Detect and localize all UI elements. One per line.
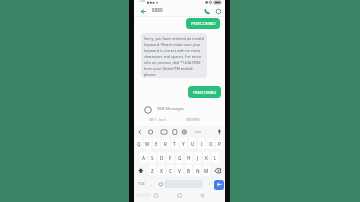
staticText: 8080 (152, 7, 163, 13)
button[interactable]: O (207, 138, 214, 149)
staticText: R (164, 141, 167, 147)
staticText: SMS/MMS (186, 118, 200, 122)
button[interactable]: H (185, 152, 192, 163)
button[interactable]: I (198, 138, 205, 149)
staticText: . (209, 181, 211, 187)
staticText: N (196, 168, 200, 174)
staticText: B (187, 168, 191, 174)
button[interactable]: V (176, 165, 183, 176)
button[interactable]: D (158, 152, 165, 163)
staticText: K (205, 155, 208, 161)
staticText: phone. (144, 72, 157, 77)
staticText: G (178, 155, 182, 161)
button[interactable]: Y (180, 138, 187, 149)
staticText: Q (137, 141, 141, 147)
staticText: L (214, 155, 217, 161)
button[interactable]: G (176, 152, 183, 163)
staticText: SMS Messages (157, 106, 184, 111)
staticText: U (191, 141, 195, 147)
button[interactable]: ?123 (135, 179, 148, 189)
staticText: from your Globe/TM mobile (144, 66, 193, 71)
staticText: M (204, 168, 209, 174)
staticText: keyword is correct with no extra (144, 48, 201, 53)
staticText: FREECOMBO (191, 21, 216, 27)
button[interactable]: W (144, 138, 151, 149)
button[interactable]: FREECOMBO (186, 18, 220, 29)
staticText: S (151, 155, 154, 161)
button[interactable] (214, 180, 224, 190)
staticText: F (169, 155, 172, 161)
staticText: SIM 1 - Send (149, 118, 166, 122)
staticText: E (155, 141, 158, 147)
staticText: info on promos, dial *143#.FREE (144, 60, 201, 65)
button[interactable]: Sorry, you have entered an invalid (141, 33, 207, 78)
button[interactable]: R (162, 138, 169, 149)
button[interactable]: S (149, 152, 156, 163)
staticText: O (209, 141, 213, 147)
staticText: Sorry, you have entered an invalid (144, 36, 204, 41)
staticText: C (169, 168, 172, 174)
button[interactable]: A (140, 152, 147, 163)
staticText: , (151, 181, 153, 187)
staticText: Z (151, 168, 154, 174)
button[interactable]: U (189, 138, 196, 149)
button[interactable]: E (153, 138, 160, 149)
staticText: J (197, 155, 199, 161)
button[interactable]: C (167, 165, 174, 176)
staticText: I (201, 141, 203, 147)
staticText: Y (182, 141, 185, 147)
staticText: T (173, 141, 176, 147)
button[interactable]: Z (149, 165, 156, 176)
staticText: FREECOMBO (193, 90, 217, 95)
button[interactable] (135, 166, 148, 176)
staticText: keyword. Please make sure your (144, 42, 201, 47)
button[interactable]: X (158, 165, 165, 176)
staticText: D (160, 155, 164, 161)
button[interactable]: B (185, 165, 192, 176)
button[interactable]: FREECOMBO (188, 86, 221, 98)
staticText: X (160, 168, 163, 174)
button[interactable]: L (212, 152, 219, 163)
staticText: V (178, 168, 181, 174)
button[interactable]: P (216, 138, 223, 149)
button[interactable]: K (203, 152, 210, 163)
staticText: 1:30 (139, 0, 145, 3)
staticText: H (187, 155, 191, 161)
button[interactable]: Q (135, 138, 142, 149)
staticText: W (145, 141, 150, 147)
button[interactable]: M (203, 165, 210, 176)
staticText: characters and spaces. For more (144, 54, 202, 59)
button[interactable]: F (167, 152, 174, 163)
button[interactable]: J (194, 152, 201, 163)
button[interactable] (212, 166, 225, 176)
button[interactable]: , (148, 179, 155, 189)
button[interactable]: N (194, 165, 201, 176)
staticText: P (218, 141, 221, 147)
staticText: A (142, 155, 146, 161)
staticText: ?123 (138, 182, 145, 186)
button[interactable]: T (171, 138, 178, 149)
